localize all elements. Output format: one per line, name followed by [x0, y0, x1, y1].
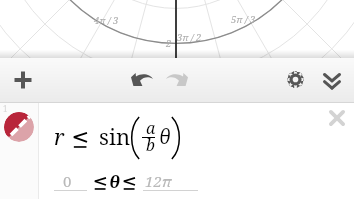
- staticText: 5π / 3: [231, 13, 256, 26]
- button[interactable]: Expression color: [4, 112, 34, 142]
- button[interactable]: Undo: [128, 65, 156, 93]
- staticText: θ: [109, 170, 121, 193]
- staticText: a: [146, 117, 156, 139]
- staticText: θ: [159, 124, 171, 150]
- staticText: 12π: [145, 171, 172, 191]
- button[interactable]: Redo: [163, 65, 191, 93]
- staticText: b: [146, 134, 155, 156]
- button[interactable]: Delete expression: [324, 105, 350, 131]
- staticText: 3π / 2: [177, 31, 202, 44]
- staticText: 0: [63, 171, 72, 191]
- staticText: sin: [99, 121, 131, 151]
- button[interactable]: Collapse: [318, 67, 346, 95]
- button[interactable]: Add expression: [8, 65, 38, 95]
- staticText: 2: [166, 37, 172, 50]
- staticText: r: [54, 121, 65, 151]
- staticText: 4π / 3: [94, 14, 119, 27]
- button[interactable]: Settings: [281, 65, 309, 93]
- staticText: 1: [3, 103, 8, 114]
